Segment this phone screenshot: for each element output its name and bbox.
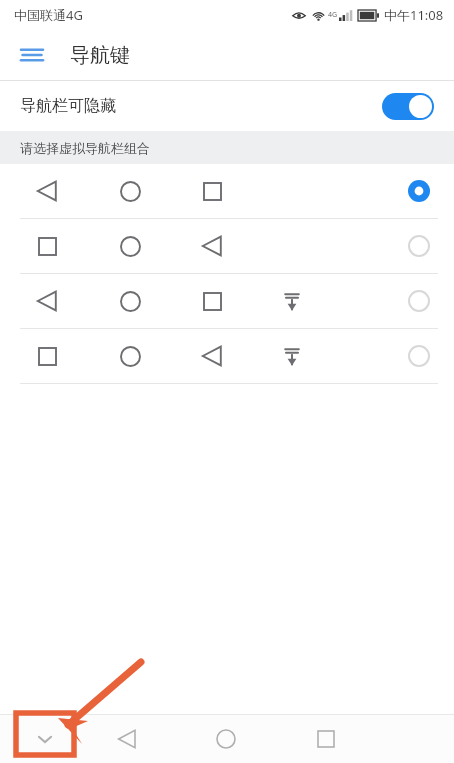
button[interactable]: Recents: [304, 717, 348, 761]
button[interactable]: [0, 219, 454, 273]
staticText: 请选择虚拟导航栏组合: [20, 140, 150, 156]
staticText: 导航键: [70, 43, 130, 68]
button[interactable]: [0, 164, 454, 218]
staticText: 中国联通4G: [14, 6, 83, 24]
staticText: 导航栏可隐藏: [20, 96, 116, 116]
staticText: 中午11:08: [384, 6, 444, 24]
button[interactable]: Back: [105, 717, 149, 761]
button[interactable]: [0, 274, 454, 328]
button[interactable]: Menu: [8, 31, 56, 79]
button[interactable]: Hide navigation bar: [23, 719, 67, 759]
button[interactable]: [0, 329, 454, 383]
staticText: 4G: [328, 10, 338, 20]
button[interactable]: 导航栏可隐藏: [0, 81, 454, 131]
button[interactable]: Home: [204, 717, 248, 761]
